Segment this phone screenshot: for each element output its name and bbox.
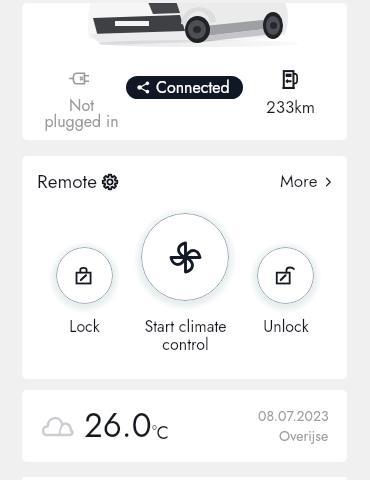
staticText: Unlock	[263, 315, 309, 338]
staticText: 26.0	[84, 402, 152, 450]
staticText: More	[280, 169, 318, 194]
button[interactable]: Lock	[56, 247, 113, 304]
staticText: 08.07.2023	[258, 406, 329, 426]
other: Remote settings	[102, 174, 118, 190]
button[interactable]: Remote	[37, 168, 118, 195]
button[interactable]: Unlock	[257, 247, 314, 304]
other: Not plugged in	[71, 68, 92, 89]
button[interactable]: More	[280, 169, 333, 194]
staticText: Not plugged in	[44, 94, 119, 133]
button[interactable]: Start climate control	[141, 213, 229, 301]
staticText: Start climate control	[144, 315, 227, 356]
button[interactable]: Connected	[126, 76, 243, 99]
staticText: °C	[152, 420, 169, 446]
staticText: Lock	[69, 315, 100, 338]
staticText: Remote	[37, 168, 97, 195]
staticText: Overijse	[279, 426, 329, 446]
staticText: Connected	[156, 76, 230, 99]
staticText: 233km	[266, 95, 315, 120]
